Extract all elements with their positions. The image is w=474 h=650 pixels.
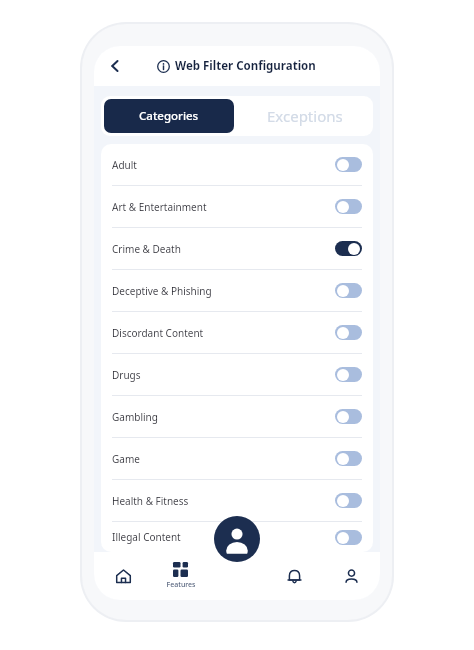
button[interactable]: Discordant Content [101,312,373,353]
button[interactable]: Profile [214,516,260,562]
staticText: Gambling [112,410,158,424]
button[interactable]: On [335,241,362,256]
button[interactable]: Game [101,438,373,479]
button[interactable]: Categories [104,99,234,133]
button[interactable]: Art & Entertainment [101,186,373,227]
button[interactable]: Off [335,157,362,172]
button[interactable]: Off [335,199,362,214]
button[interactable]: Off [335,451,362,466]
button[interactable]: Deceptive & Phishing [101,270,373,311]
button[interactable]: Illegal Content [101,522,373,552]
staticText: Discordant Content [112,326,204,340]
button[interactable]: Crime & Death [101,228,373,269]
staticText: Illegal Content [112,530,181,544]
button[interactable]: Health & Fitness [101,480,373,521]
staticText: Crime & Death [112,242,181,256]
button[interactable]: Features [152,552,209,600]
staticText: Game [112,452,140,466]
button[interactable]: Gambling [101,396,373,437]
button[interactable]: Off [335,409,362,424]
staticText: Features [166,580,196,590]
button[interactable]: Off [335,283,362,298]
button[interactable]: Home [94,552,152,600]
staticText: Art & Entertainment [112,200,207,214]
staticText: Drugs [112,368,141,382]
button[interactable]: Adult [101,144,373,185]
staticText: Web Filter Configuration [175,58,316,74]
button[interactable]: Account [323,552,380,600]
button[interactable]: Back [102,53,128,79]
staticText: Health & Fitness [112,494,189,508]
staticText: Exceptions [267,106,343,126]
button[interactable]: Off [335,493,362,508]
button[interactable]: Off [335,367,362,382]
button[interactable]: Off [335,325,362,340]
button[interactable]: Drugs [101,354,373,395]
button[interactable]: Exceptions [237,96,373,136]
staticText: Adult [112,158,137,172]
staticText: Categories [139,108,199,124]
button[interactable]: Off [335,530,362,545]
staticText: Deceptive & Phishing [112,284,212,298]
button[interactable]: Notifications [266,552,323,600]
